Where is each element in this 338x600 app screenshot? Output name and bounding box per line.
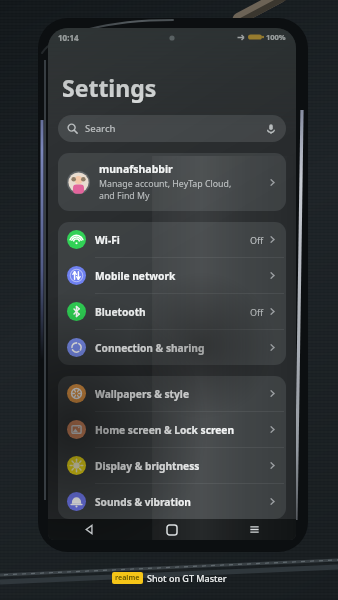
staticText: Mobile network	[95, 269, 268, 283]
button[interactable]: munafshabbir	[58, 153, 286, 211]
button[interactable]: Search	[58, 115, 286, 142]
button[interactable]: Display & brightness	[58, 448, 286, 483]
button[interactable]: Back	[48, 519, 130, 540]
other: Voice search	[265, 123, 277, 135]
staticText: munafshabbir	[99, 162, 173, 176]
staticText: Settings	[62, 72, 157, 103]
button[interactable]: Mobile network	[58, 258, 286, 293]
staticText: Search	[85, 122, 116, 135]
button[interactable]: Wallpapers & style	[58, 376, 286, 411]
staticText: realme	[115, 573, 140, 583]
staticText: Manage account, HeyTap Cloud,	[99, 178, 232, 190]
staticText: Bluetooth	[95, 305, 250, 319]
staticText: and Find My	[99, 190, 150, 202]
button[interactable]: Wi-Fi	[58, 222, 286, 257]
staticText: 100%	[266, 32, 286, 42]
button[interactable]: Home	[130, 519, 213, 540]
staticText: Sounds & vibration	[95, 495, 268, 509]
staticText: Wallpapers & style	[95, 387, 268, 401]
button[interactable]: Bluetooth	[58, 294, 286, 329]
staticText: Home screen & Lock screen	[95, 423, 268, 437]
button[interactable]: Recents	[213, 519, 296, 540]
button[interactable]: Connection & sharing	[58, 330, 286, 365]
staticText: Off	[250, 306, 264, 318]
button[interactable]: Sounds & vibration	[58, 484, 286, 519]
staticText: Shot on GT Master	[147, 572, 227, 584]
staticText: Off	[250, 234, 264, 246]
staticText: Connection & sharing	[95, 341, 268, 355]
staticText: Wi-Fi	[95, 233, 250, 247]
button[interactable]: Home screen & Lock screen	[58, 412, 286, 447]
staticText: Display & brightness	[95, 459, 268, 473]
staticText: 10:14	[58, 32, 79, 43]
